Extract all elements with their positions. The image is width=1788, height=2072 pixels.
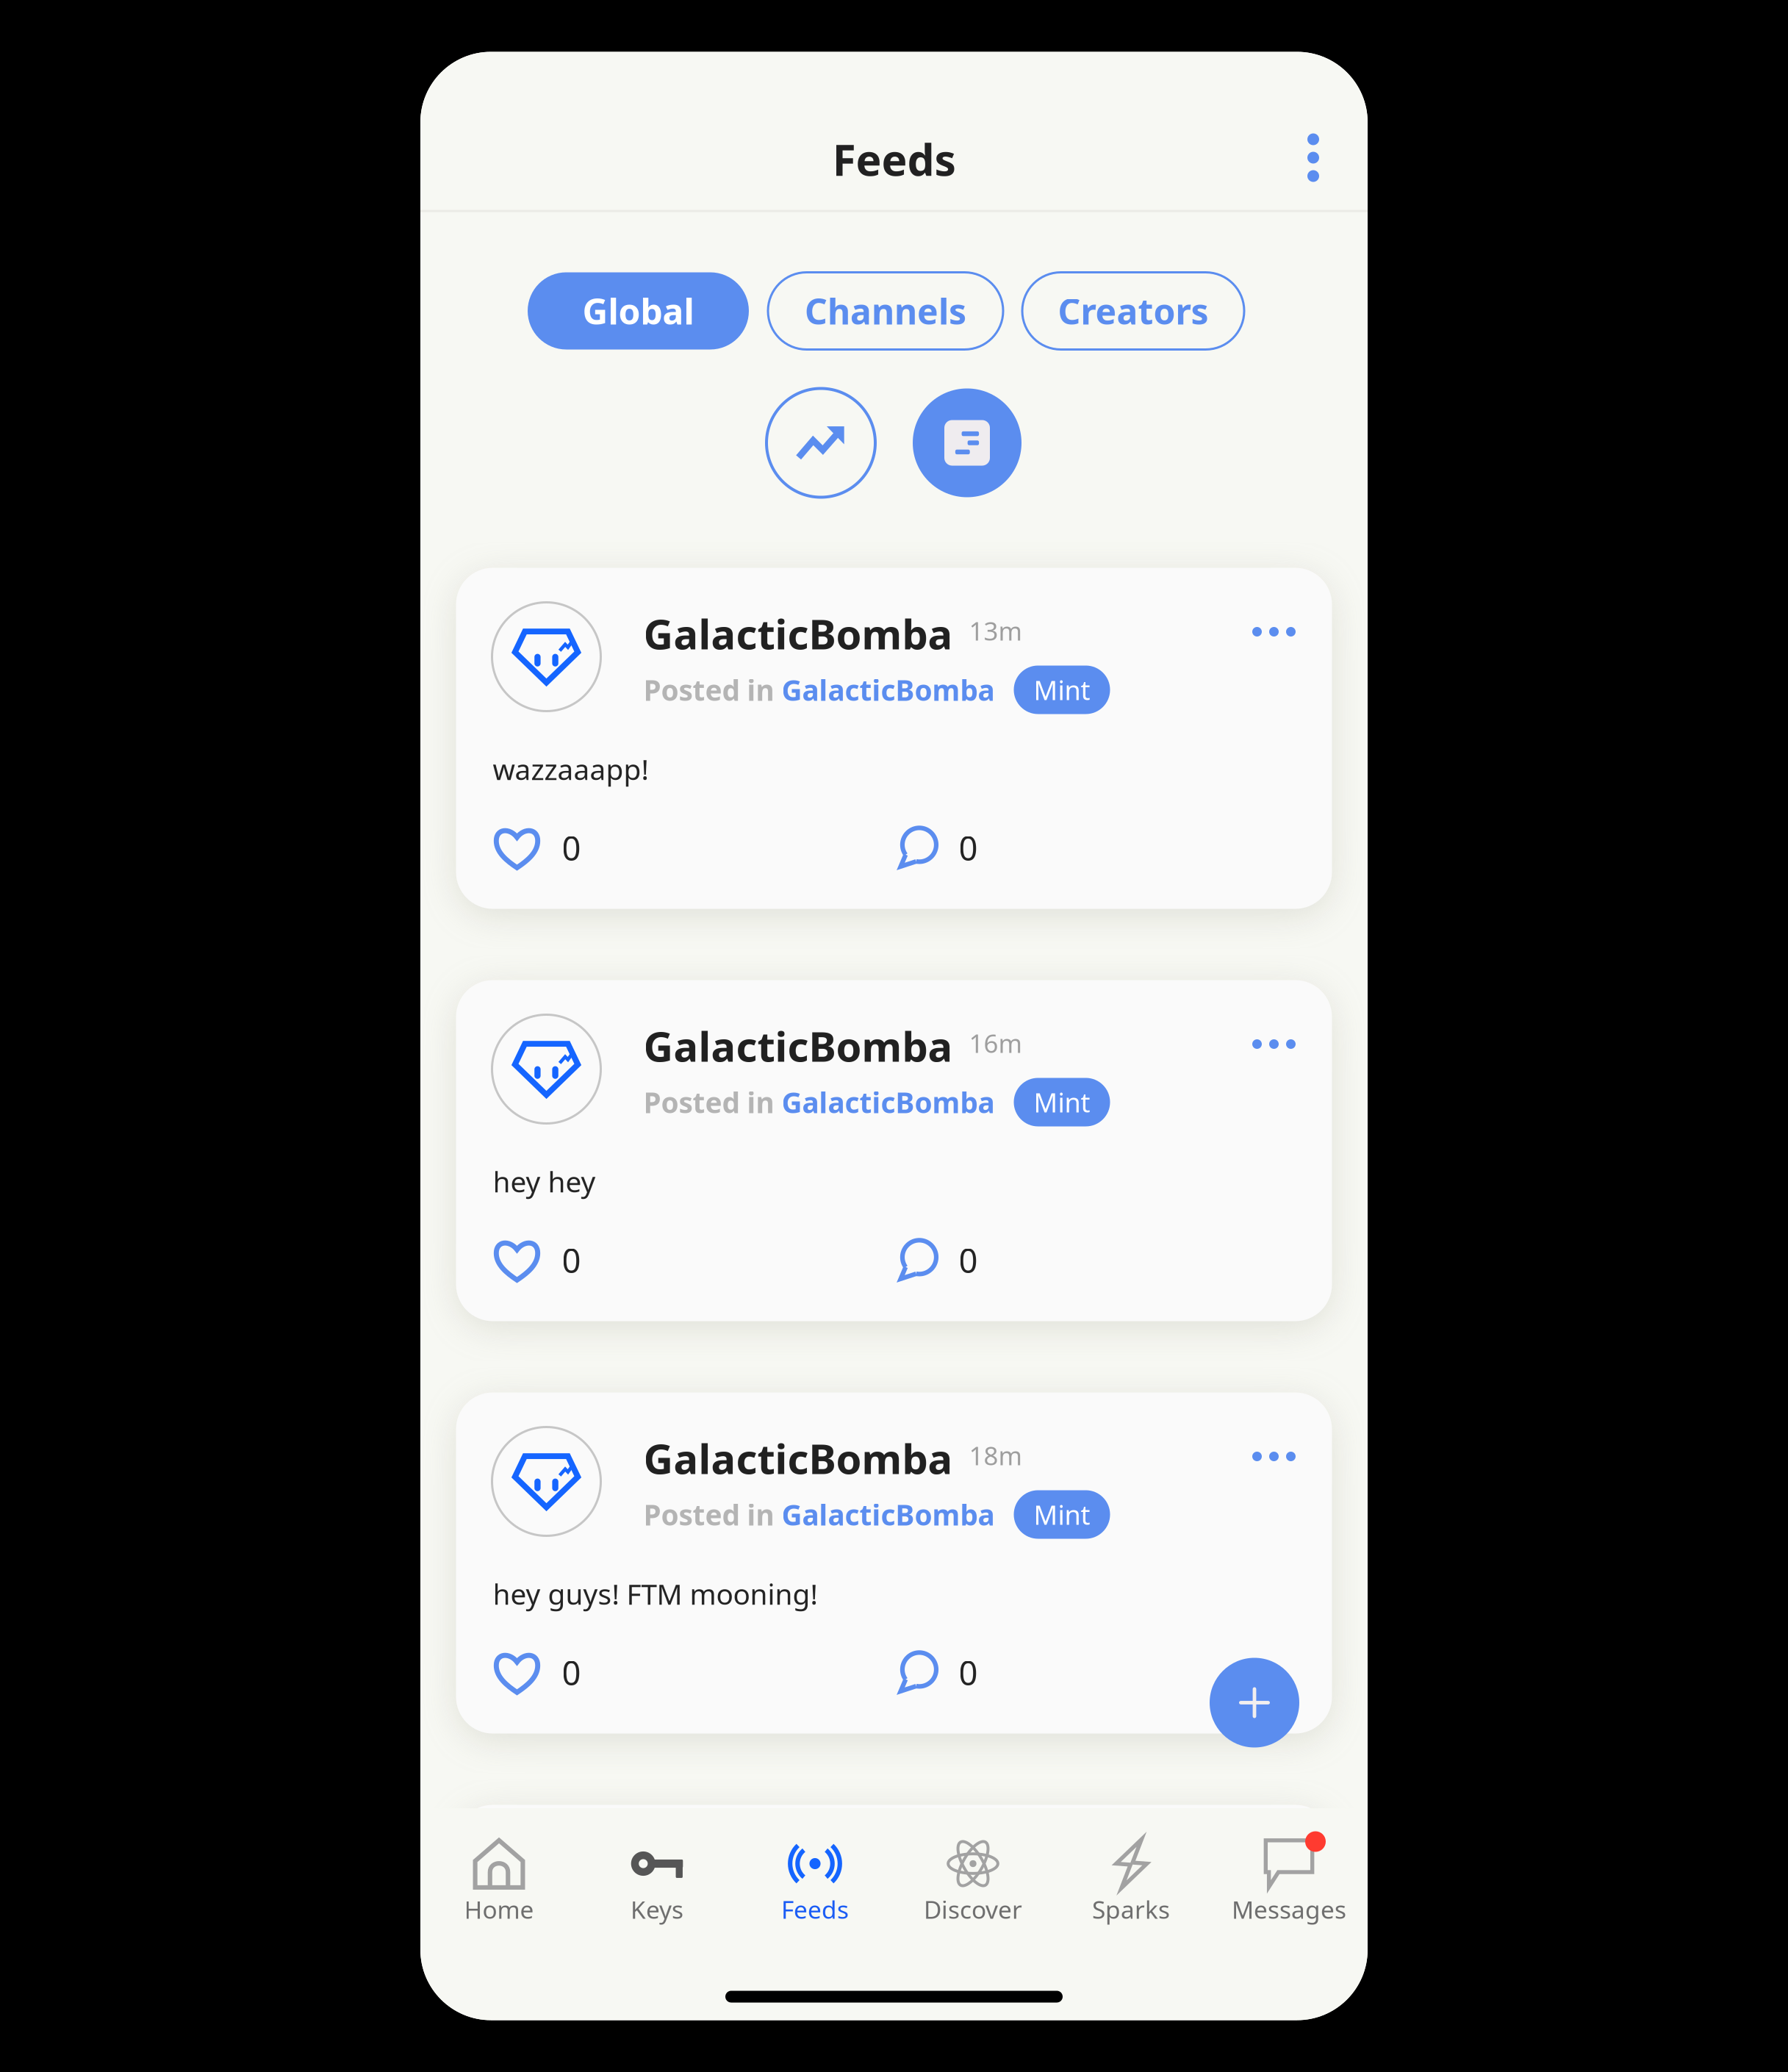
staticText: Posted in	[643, 1908, 782, 1946]
button[interactable]: More options	[1234, 1434, 1314, 1478]
staticText: Sparks	[1092, 1893, 1170, 1926]
staticText: 16m	[969, 1026, 1022, 1060]
staticText: wazzaaapp!	[493, 750, 649, 788]
staticText: Feeds	[832, 130, 956, 188]
staticText: 21m	[969, 1851, 1022, 1884]
button[interactable]: 0	[495, 1237, 581, 1283]
button[interactable]: 0	[495, 825, 581, 871]
button[interactable]: Mint	[1014, 666, 1110, 714]
staticText: 0	[562, 1238, 581, 1282]
button[interactable]: 0	[495, 1650, 581, 1695]
staticText: Posted in	[643, 671, 782, 709]
button[interactable]: Feeds	[736, 1837, 894, 1926]
staticText: GalacticBomba	[782, 1496, 995, 1533]
staticText: Channels	[805, 287, 966, 334]
staticText: Posted in	[643, 1083, 782, 1121]
staticText: 18m	[969, 1438, 1022, 1472]
button[interactable]: Trending	[766, 388, 875, 497]
button[interactable]: More options	[1234, 1022, 1314, 1066]
button[interactable]: Feed	[913, 388, 1022, 497]
button[interactable]: New post	[1210, 1658, 1299, 1747]
staticText: Messages	[1232, 1893, 1346, 1926]
staticText: Feeds	[781, 1893, 849, 1926]
staticText: Posted in	[643, 1496, 782, 1533]
staticText: GalacticBomba	[782, 671, 995, 709]
button[interactable]: 0	[895, 1650, 978, 1695]
staticText: Mint	[1034, 1497, 1090, 1532]
button[interactable]: Mint	[1014, 1078, 1110, 1126]
staticText: GalacticBomba	[782, 1908, 995, 1946]
staticText: Home	[464, 1893, 534, 1926]
staticText: Keys	[631, 1893, 683, 1926]
staticText: GalacticBomba	[643, 1018, 953, 1073]
staticText: Global	[582, 287, 694, 334]
staticText: 0	[562, 1650, 581, 1695]
button[interactable]: More options	[1234, 1847, 1314, 1891]
staticText: 0	[959, 1238, 978, 1282]
staticText: GalacticBomba	[643, 1843, 953, 1898]
staticText: hey hey	[493, 1162, 596, 1200]
button[interactable]: Global	[528, 272, 749, 349]
button[interactable]: Messages	[1210, 1837, 1368, 1926]
staticText: 13m	[969, 614, 1022, 647]
staticText: Mint	[1034, 1085, 1090, 1120]
staticText: GalacticBomba	[643, 1431, 953, 1485]
staticText: gm	[493, 1987, 537, 2025]
staticText: Mint	[1034, 672, 1090, 707]
button[interactable]: Sparks	[1052, 1837, 1210, 1926]
button[interactable]: 0	[895, 1237, 978, 1283]
staticText: 0	[959, 1650, 978, 1695]
staticText: hey guys! FTM mooning!	[493, 1575, 818, 1612]
staticText: GalacticBomba	[643, 606, 953, 661]
staticText: 0	[562, 826, 581, 870]
button[interactable]: More options	[1234, 610, 1314, 654]
button[interactable]: 0	[895, 825, 978, 871]
staticText: Creators	[1058, 287, 1209, 334]
staticText: GalacticBomba	[782, 1083, 995, 1121]
button[interactable]: Home	[420, 1837, 578, 1926]
button[interactable]: Keys	[578, 1837, 736, 1926]
button[interactable]: Channels	[768, 272, 1003, 349]
button[interactable]: Mint	[1014, 1490, 1110, 1539]
button[interactable]: Mint	[1014, 1903, 1110, 1951]
button[interactable]: Discover	[894, 1837, 1052, 1926]
staticText: 0	[959, 826, 978, 870]
staticText: Discover	[924, 1893, 1022, 1926]
button[interactable]: Creators	[1022, 272, 1244, 349]
button[interactable]: More	[1275, 116, 1351, 199]
